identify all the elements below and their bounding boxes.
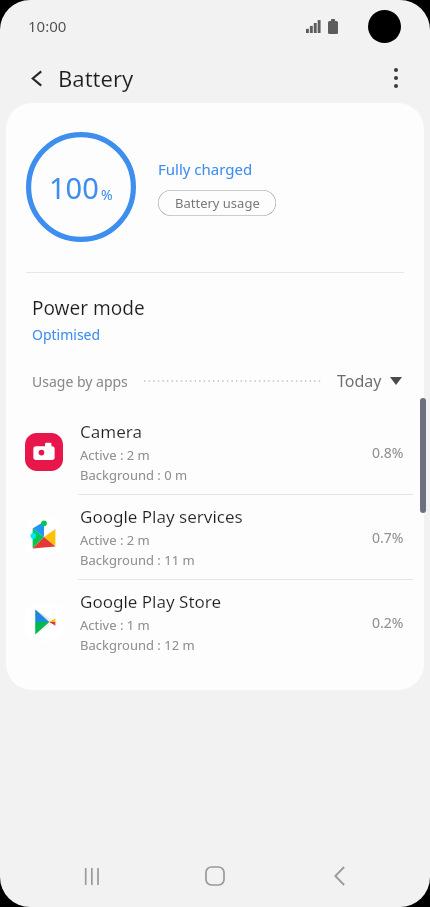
button[interactable]: More options	[374, 56, 418, 100]
staticText: Background : 11 m	[80, 551, 195, 569]
staticText: %	[101, 185, 113, 204]
staticText: Active : 1 m	[80, 616, 150, 634]
staticText: Battery	[58, 63, 134, 93]
staticText: 0.7%	[372, 528, 404, 547]
button[interactable]: Back	[307, 845, 371, 907]
button[interactable]: Recent apps	[60, 845, 124, 907]
staticText: Background : 12 m	[80, 636, 195, 654]
staticText: 0.2%	[372, 613, 404, 632]
staticText: Background : 0 m	[80, 466, 188, 484]
staticText: Battery usage	[175, 194, 260, 212]
staticText: 0.8%	[372, 443, 404, 462]
staticText: Optimised	[32, 325, 101, 344]
button[interactable]: Camera	[6, 410, 424, 494]
staticText: Google Play Store	[80, 590, 222, 613]
staticText: Power mode	[32, 295, 145, 321]
button[interactable]: Power mode	[6, 295, 424, 344]
staticText: 100	[49, 168, 99, 207]
staticText: Google Play services	[80, 505, 243, 528]
button[interactable]: Google Play services	[6, 495, 424, 579]
staticText: 10:00	[28, 16, 67, 36]
button[interactable]: Battery usage	[158, 190, 276, 216]
staticText: Today	[337, 370, 382, 392]
button[interactable]: Home	[183, 845, 247, 907]
staticText: Usage by apps	[32, 372, 128, 391]
staticText: Fully charged	[158, 159, 253, 179]
staticText: Active : 2 m	[80, 446, 150, 464]
button[interactable]: Back	[18, 59, 56, 97]
staticText: Active : 2 m	[80, 531, 150, 549]
button[interactable]: Google Play Store	[6, 580, 424, 664]
staticText: Camera	[80, 420, 142, 443]
button[interactable]: Today	[337, 370, 402, 392]
